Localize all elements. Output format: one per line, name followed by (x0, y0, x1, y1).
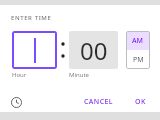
staticText: CANCEL (84, 97, 113, 107)
staticText: OK (135, 97, 146, 107)
button[interactable]: AM (126, 31, 150, 50)
button[interactable]: Switch to clock mode (8, 94, 25, 111)
staticText: Minute (69, 71, 89, 79)
button[interactable]: OK (130, 93, 151, 111)
button[interactable]: 00 (69, 31, 118, 69)
staticText: 00 (80, 34, 108, 67)
button[interactable]: CANCEL (79, 93, 118, 111)
staticText: Hour (12, 71, 27, 79)
staticText: PM (133, 55, 144, 65)
button[interactable] (12, 31, 57, 69)
staticText: AM (132, 36, 144, 46)
button[interactable]: PM (126, 50, 150, 69)
staticText: ENTER TIME (11, 14, 52, 22)
